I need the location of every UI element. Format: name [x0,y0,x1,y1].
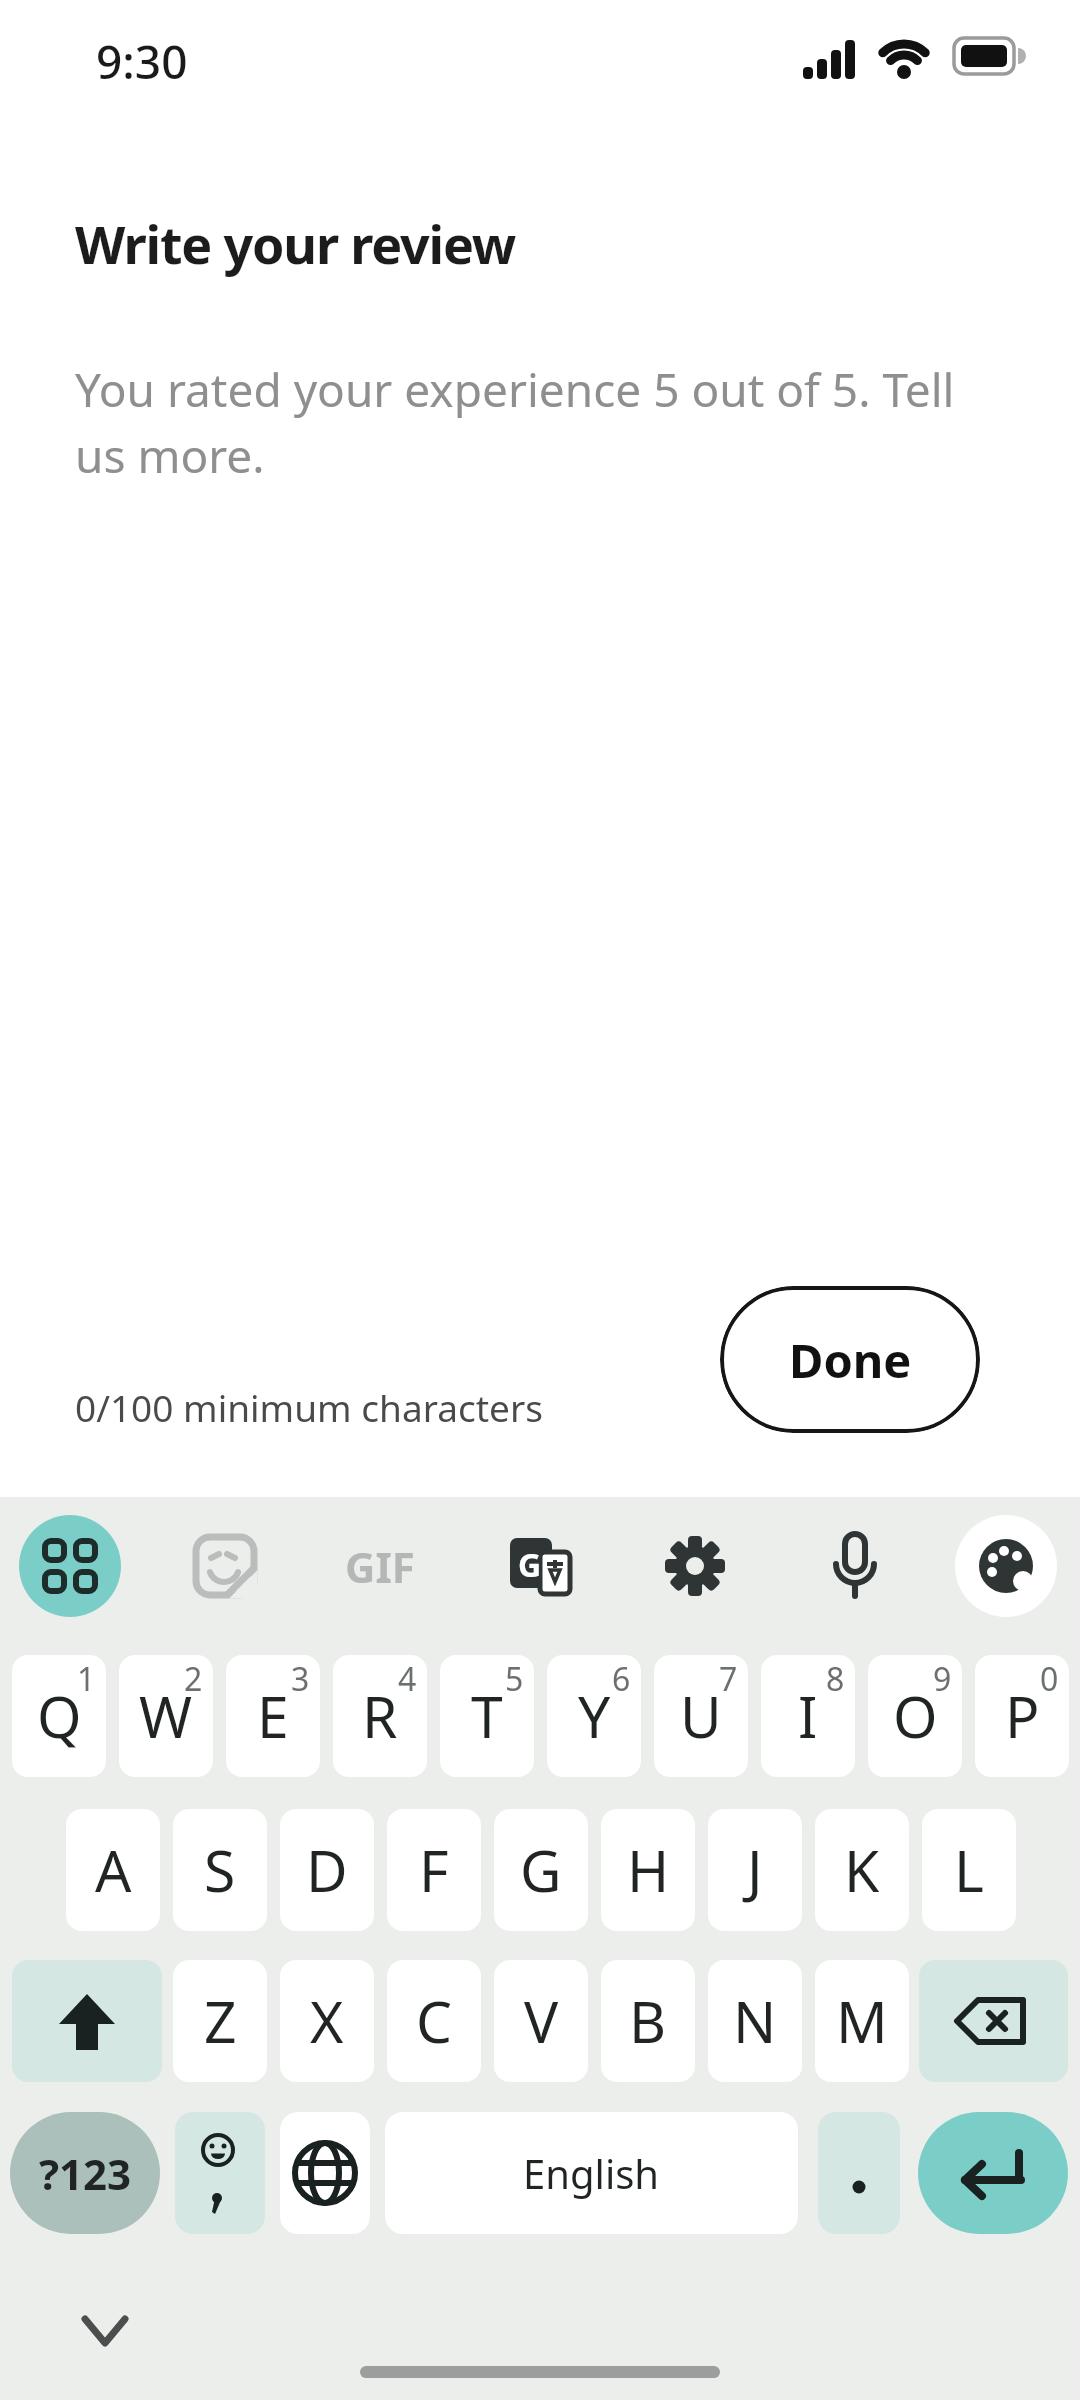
button[interactable]: Z [173,1960,267,2082]
button[interactable]: H [601,1809,695,1931]
staticText: Done [789,1328,912,1392]
button[interactable]: L [922,1809,1016,1931]
button[interactable]: S [173,1809,267,1931]
staticText: GIF [345,1538,415,1595]
staticText: 9:30 [96,30,188,93]
staticText: English [523,2146,660,2200]
button[interactable]: K [815,1809,909,1931]
staticText: R [362,1677,398,1755]
staticText: W [139,1677,193,1755]
staticText: M [836,1982,888,2060]
staticText: V [524,1982,559,2060]
staticText: U [680,1677,722,1755]
button[interactable]: E [226,1655,320,1777]
staticText: 8 [826,1657,845,1701]
button[interactable]: D [280,1809,374,1931]
button[interactable]: G [490,1516,590,1616]
staticText: Y [578,1677,611,1755]
staticText: D [306,1831,348,1909]
button[interactable]: J [708,1809,802,1931]
button[interactable] [955,1515,1057,1617]
staticText: 5 [505,1657,524,1701]
staticText: E [257,1677,289,1755]
staticText: P [1005,1677,1040,1755]
staticText: Write your review [75,208,516,279]
button[interactable]: Q [12,1655,106,1777]
staticText: Q [37,1677,82,1755]
button[interactable]: ?123 [10,2112,160,2234]
button[interactable] [175,1516,275,1616]
staticText: ?123 [39,2145,132,2202]
button[interactable]: F [387,1809,481,1931]
staticText: 0 [1040,1657,1059,1701]
staticText: X [310,1982,344,2060]
staticText: 9 [933,1657,952,1701]
staticText: N [733,1982,777,2060]
staticText: I [798,1677,818,1755]
button[interactable]: C [387,1960,481,2082]
staticText: 4 [398,1657,417,1701]
button[interactable] [175,2112,265,2234]
staticText: G [520,1831,562,1909]
button[interactable]: V [494,1960,588,2082]
button[interactable]: I [761,1655,855,1777]
button[interactable]: N [708,1960,802,2082]
staticText: T [471,1677,503,1755]
staticText: Z [204,1982,237,2060]
button[interactable] [12,1960,162,2082]
staticText: J [747,1831,763,1909]
staticText: S [204,1831,236,1909]
staticText: 1 [77,1657,96,1701]
button[interactable]: W [119,1655,213,1777]
button[interactable]: Y [547,1655,641,1777]
button[interactable] [280,2112,370,2234]
staticText: C [416,1982,453,2060]
button[interactable]: M [815,1960,909,2082]
button[interactable] [918,2112,1068,2234]
staticText: G [518,1543,542,1587]
button[interactable] [19,1515,121,1617]
staticText: 7 [719,1657,738,1701]
staticText: K [844,1831,880,1909]
button[interactable]: U [654,1655,748,1777]
button[interactable]: P [975,1655,1069,1777]
button[interactable]: T [440,1655,534,1777]
button[interactable]: R [333,1655,427,1777]
staticText: L [954,1831,984,1909]
staticText: 3 [291,1657,310,1701]
staticText: 6 [612,1657,631,1701]
button[interactable]: A [66,1809,160,1931]
staticText: 0/100 minimum characters [75,1382,543,1432]
staticText: F [419,1831,449,1909]
button[interactable]: O [868,1655,962,1777]
staticText: H [627,1831,670,1909]
button[interactable]: Done [720,1286,980,1433]
button[interactable] [919,1960,1068,2082]
button[interactable]: G [494,1809,588,1931]
staticText: You rated your experience 5 out of 5. Te… [75,358,955,486]
button[interactable] [645,1516,745,1616]
button[interactable] [65,2303,145,2369]
button[interactable]: GIF [330,1516,430,1616]
staticText: B [629,1982,667,2060]
button[interactable] [818,2112,900,2234]
button[interactable]: English [385,2112,798,2234]
staticText: 2 [184,1657,203,1701]
button[interactable] [805,1516,905,1616]
button[interactable]: B [601,1960,695,2082]
button[interactable]: X [280,1960,374,2082]
staticText: A [95,1831,132,1909]
staticText: O [893,1677,938,1755]
